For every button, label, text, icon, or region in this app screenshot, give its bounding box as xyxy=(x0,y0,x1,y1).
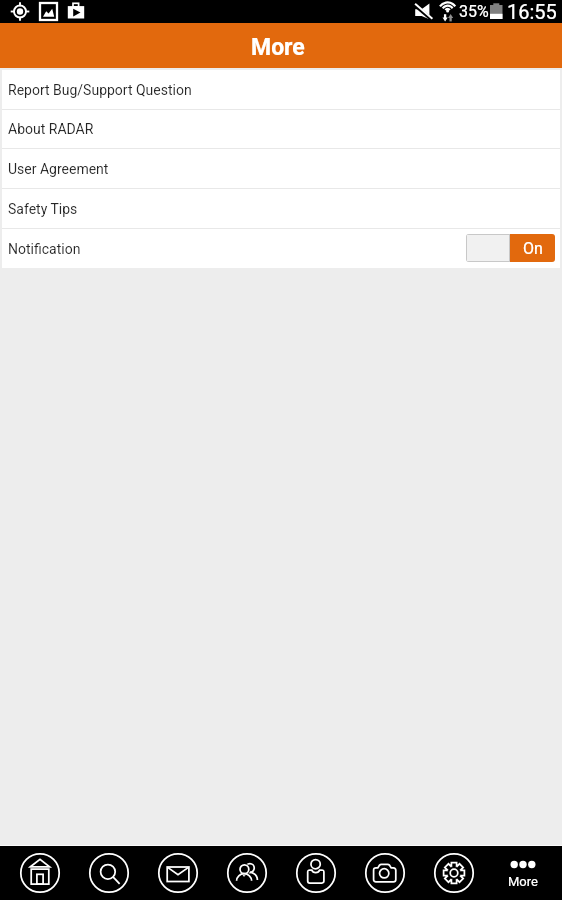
button[interactable]: On xyxy=(466,234,555,262)
button[interactable]: More xyxy=(483,846,562,900)
staticText: 16:55 xyxy=(507,0,557,23)
button[interactable]: Home xyxy=(0,846,69,900)
staticText: Report Bug/Support Question xyxy=(8,82,192,98)
staticText: About RADAR xyxy=(8,121,94,137)
button[interactable]: Safety Tips xyxy=(2,189,560,228)
button[interactable]: Friends xyxy=(207,846,276,900)
button[interactable]: User Agreement xyxy=(2,149,560,188)
button[interactable]: Profile xyxy=(276,846,345,900)
button[interactable]: Settings xyxy=(414,846,483,900)
button[interactable]: Search xyxy=(69,846,138,900)
staticText: On xyxy=(523,239,543,258)
staticText: 35% xyxy=(459,2,489,21)
button[interactable]: Report Bug/Support Question xyxy=(2,70,560,109)
staticText: More xyxy=(251,34,305,61)
staticText: User Agreement xyxy=(8,161,109,177)
button[interactable]: Messages xyxy=(138,846,207,900)
staticText: More xyxy=(508,874,538,889)
staticText: Safety Tips xyxy=(8,201,78,217)
button[interactable]: Camera xyxy=(345,846,414,900)
staticText: Notification xyxy=(8,241,81,257)
button[interactable]: About RADAR xyxy=(2,110,560,148)
